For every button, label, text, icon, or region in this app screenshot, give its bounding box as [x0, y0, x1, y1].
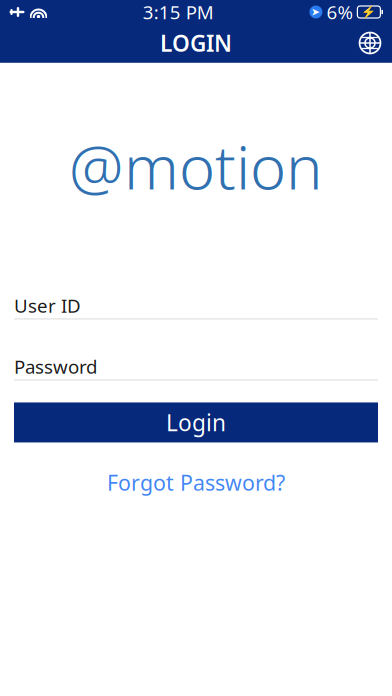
staticText: ⚡ [361, 5, 376, 19]
staticText: 6% [326, 0, 353, 24]
staticText: LOGIN [160, 28, 232, 58]
staticText: 3:15 PM [143, 0, 214, 24]
button[interactable]: Forgot Password? [14, 470, 378, 494]
staticText: Password [14, 354, 97, 379]
staticText: User ID [14, 293, 81, 318]
button[interactable]: Login [14, 402, 378, 442]
staticText: Login [166, 407, 226, 437]
staticText: Forgot Password? [107, 468, 285, 497]
staticText: ➤ [311, 6, 320, 18]
staticText: @motion [69, 125, 323, 206]
button[interactable]: Change language [348, 24, 392, 62]
